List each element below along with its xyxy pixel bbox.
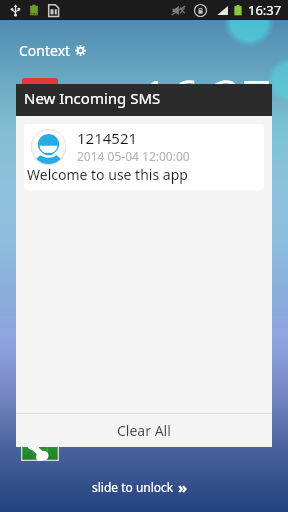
button[interactable]: Clear All	[16, 414, 272, 447]
staticText: Clear All	[117, 421, 171, 440]
button[interactable]: slide to unlock	[92, 477, 188, 497]
staticText: »	[178, 477, 188, 497]
staticText: 16:37	[140, 62, 272, 133]
other: Settings	[75, 45, 86, 56]
staticText: Welcome to use this app	[27, 165, 188, 184]
button[interactable]: Context	[19, 41, 86, 60]
staticText: 1214521	[77, 128, 138, 148]
staticText: Context	[19, 41, 71, 60]
staticText: 2014 05-04 12:00:00	[77, 148, 190, 164]
button[interactable]: Phone	[21, 422, 59, 461]
staticText: 16:37	[248, 1, 282, 19]
button[interactable]: 1214521	[24, 124, 264, 190]
staticText: slide to unlock	[92, 479, 174, 495]
staticText: New Incoming SMS	[24, 88, 161, 108]
